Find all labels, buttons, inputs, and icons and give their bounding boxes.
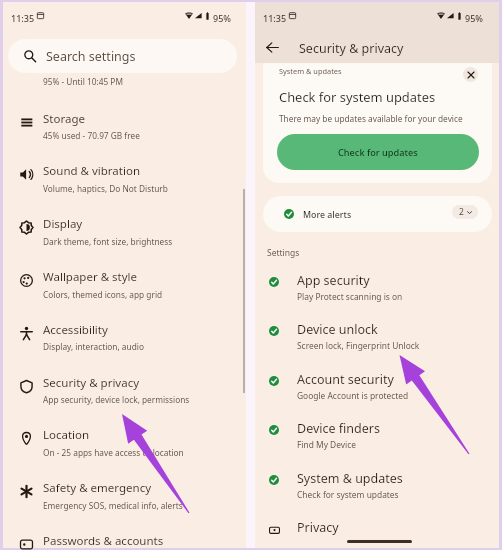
staticText: Sound & vibration [43,163,140,179]
button[interactable] [255,264,499,312]
staticText: System & updates [279,66,342,76]
button[interactable] [255,412,499,460]
staticText: There may be updates available for your … [279,113,463,124]
button[interactable] [3,99,246,151]
staticText: Check for system updates [279,88,436,106]
staticText: 95% [465,12,483,24]
staticText: App security, device lock, permissions [43,394,190,405]
staticText: Wallpaper & style [43,269,138,285]
staticText: Search settings [46,48,136,65]
staticText: Privacy [297,519,339,536]
button[interactable] [255,511,499,550]
staticText: Display [43,216,83,232]
staticText: 45% used - 70.97 GB free [43,130,140,141]
staticText: Safety & emergency [43,480,152,496]
staticText: Play Protect scanning is on [297,291,403,302]
staticText: On - 25 apps have access to location [43,447,184,458]
staticText: Passwords & accounts [43,533,164,549]
staticText: Security & privacy [43,375,140,391]
staticText: Volume, haptics, Do Not Disturb [43,183,168,194]
button[interactable] [3,363,246,415]
button[interactable] [3,310,246,362]
staticText: 11:35 [263,12,287,24]
button[interactable] [3,468,246,520]
button[interactable] [3,204,246,256]
staticText: Google Account is protected [297,390,409,401]
button[interactable]: Back [261,36,283,58]
staticText: Find My Device [297,439,356,450]
staticText: Display, interaction, audio [43,341,144,352]
staticText: 2 [459,206,464,218]
button[interactable]: Dismiss [463,67,478,82]
staticText: 95% - Until 10:45 PM [43,76,123,87]
staticText: Device finders [297,420,380,437]
button[interactable] [3,521,246,550]
staticText: Accessibility [43,322,108,338]
staticText: Settings [267,247,300,259]
button[interactable] [3,151,246,203]
staticText: Dark theme, font size, brightness [43,236,173,247]
button[interactable]: Check for updates [277,134,479,170]
staticText: Check for updates [338,146,418,159]
button[interactable]: More alerts [263,196,492,232]
button[interactable] [3,257,246,309]
staticText: Security & privacy [299,40,404,57]
staticText: System & updates [297,470,403,487]
staticText: Screen lock, Fingerprint Unlock [297,340,420,351]
staticText: 95% [213,12,231,24]
staticText: Emergency SOS, medical info, alerts [43,500,183,511]
staticText: Account security [297,371,394,388]
staticText: App security [297,272,370,289]
staticText: Device unlock [297,321,378,338]
staticText: 11:35 [11,12,35,24]
staticText: More alerts [303,209,352,221]
button[interactable] [255,363,499,411]
staticText: Check for system updates [297,489,399,500]
staticText: Storage [43,111,85,127]
staticText: Colors, themed icons, app grid [43,289,163,300]
button[interactable] [3,415,246,467]
button[interactable] [255,313,499,361]
staticText: Location [43,427,90,443]
button[interactable] [255,462,499,510]
button[interactable]: Search settings [8,39,237,73]
